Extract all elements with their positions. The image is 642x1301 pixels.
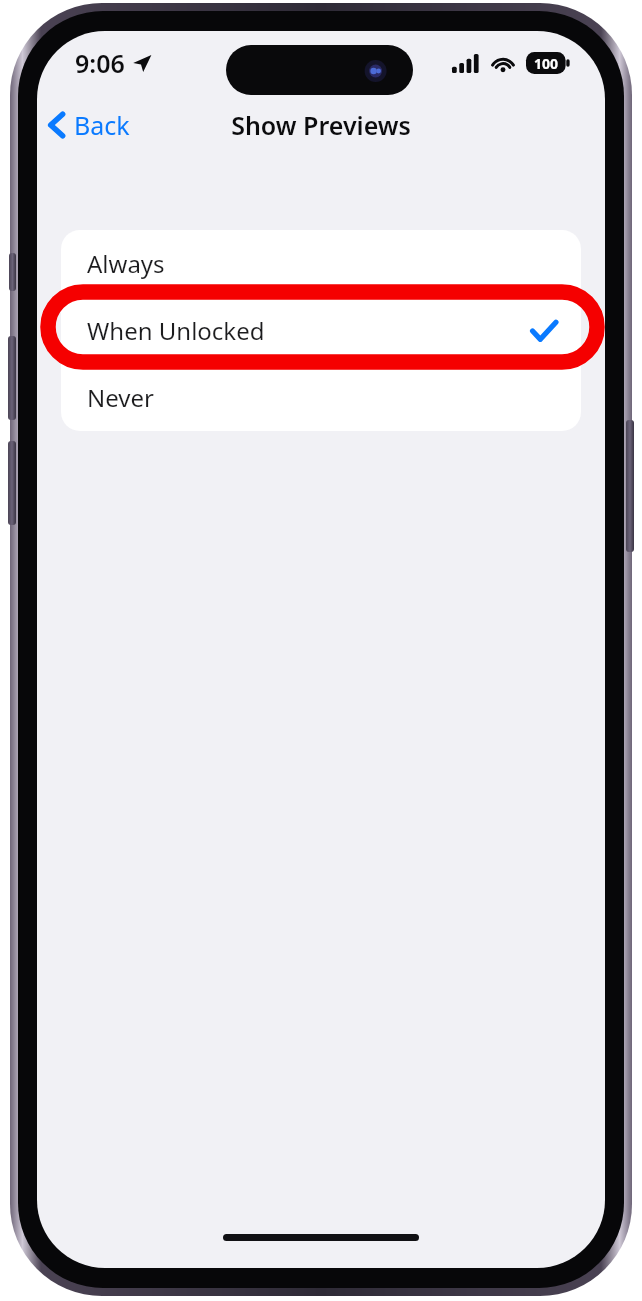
staticText: Always [87,247,165,280]
button[interactable]: Back [37,102,142,148]
button[interactable]: Never [61,364,581,431]
staticText: Back [74,108,130,142]
staticText: Never [87,381,154,414]
button[interactable]: Always [61,230,581,297]
staticText: 9:06 [75,46,125,80]
button[interactable]: When Unlocked [61,297,581,364]
staticText: Show Previews [231,108,411,142]
staticText: 100 [534,54,559,73]
staticText: When Unlocked [87,314,265,347]
other: Selected [531,320,557,342]
